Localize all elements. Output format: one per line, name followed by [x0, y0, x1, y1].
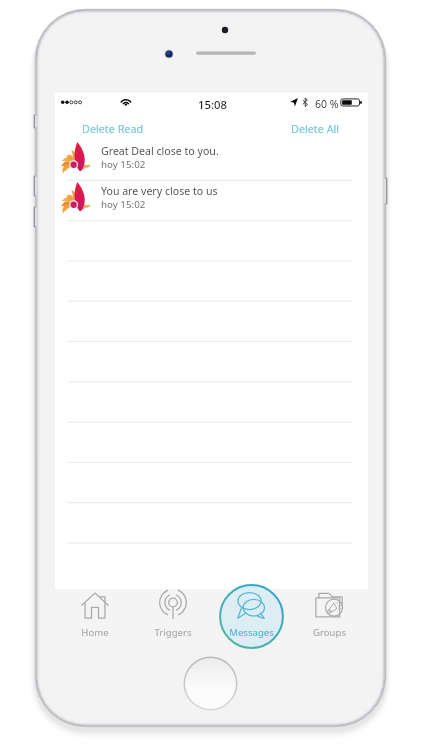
staticText: Groups: [313, 626, 346, 639]
staticText: 60 %: [315, 97, 339, 111]
button[interactable]: You are very close to us: [55, 180, 368, 220]
staticText: hoy 15:02: [101, 158, 146, 171]
button[interactable]: Great Deal close to you.: [55, 140, 368, 180]
button[interactable]: Groups: [290, 589, 368, 643]
button[interactable]: Messages: [212, 589, 290, 643]
staticText: You are very close to us: [101, 184, 218, 198]
button[interactable]: Delete Read: [76, 118, 150, 139]
button[interactable]: Home: [55, 589, 134, 643]
staticText: Great Deal close to you.: [101, 144, 219, 158]
staticText: Delete Read: [82, 121, 144, 136]
staticText: Home: [81, 626, 109, 639]
staticText: hoy 15:02: [101, 198, 146, 211]
staticText: Delete All: [291, 121, 340, 136]
button[interactable]: Delete All: [285, 118, 346, 139]
staticText: 15:08: [198, 97, 227, 112]
staticText: Messages: [229, 626, 274, 639]
button[interactable]: Triggers: [134, 589, 212, 643]
staticText: Triggers: [154, 626, 192, 639]
